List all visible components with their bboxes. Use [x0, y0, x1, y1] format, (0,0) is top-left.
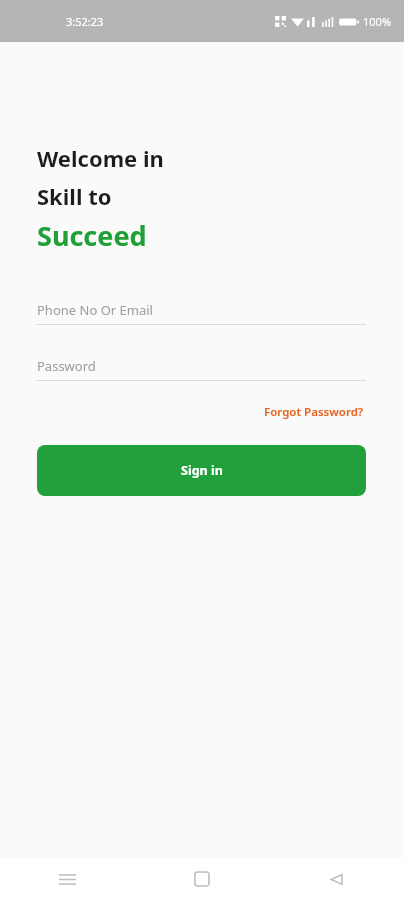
button[interactable]: Forgot Password? — [262, 400, 366, 424]
button[interactable]: Home — [134, 858, 269, 900]
staticText: Welcome in — [37, 143, 164, 173]
staticText: 100% — [363, 14, 392, 29]
staticText: Password — [37, 357, 96, 375]
button[interactable]: Password — [37, 351, 366, 381]
button[interactable]: Back — [269, 858, 404, 900]
staticText: Skill to — [37, 181, 112, 211]
button[interactable]: Phone No Or Email — [37, 295, 366, 325]
staticText: 3:52:23 — [66, 14, 104, 29]
button[interactable]: Recent apps — [0, 858, 134, 900]
staticText: Phone No Or Email — [37, 301, 153, 319]
staticText: Forgot Password? — [264, 404, 364, 420]
staticText: Sign in — [181, 462, 223, 479]
staticText: Succeed — [37, 217, 147, 254]
button[interactable]: Sign in — [37, 445, 366, 496]
